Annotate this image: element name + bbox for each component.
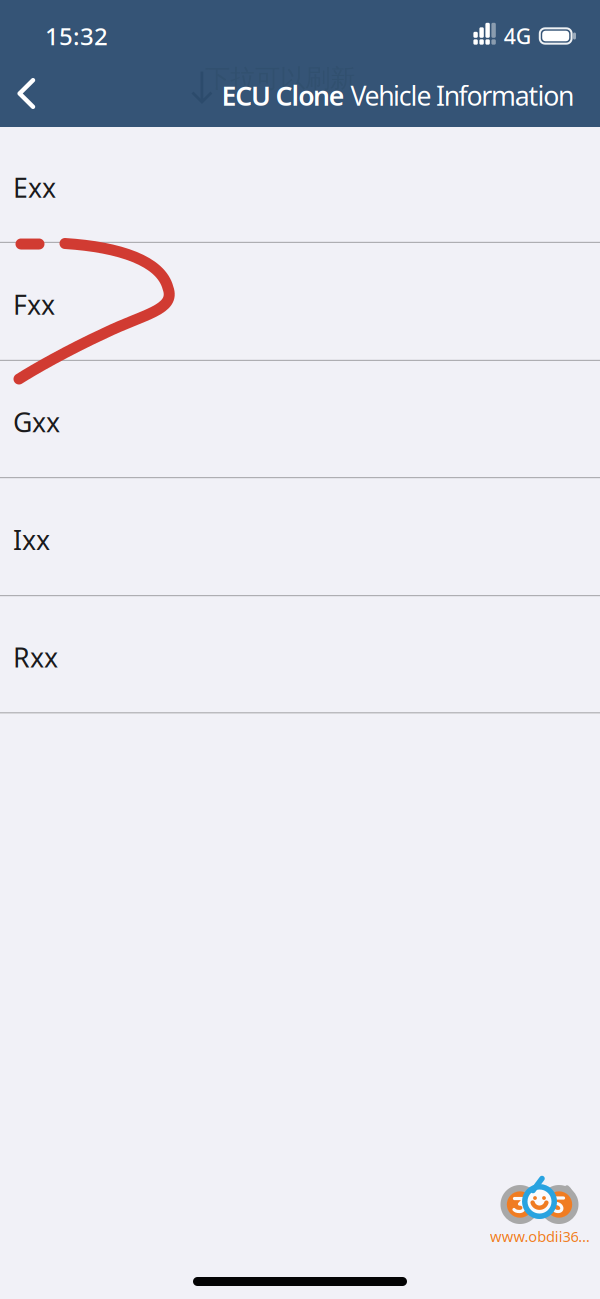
button[interactable]: Fxx [0, 243, 600, 361]
staticText: Exx [13, 170, 56, 205]
staticText: Vehicle Information [345, 78, 574, 113]
button[interactable]: Rxx [0, 596, 600, 713]
staticText: 15:32 [45, 20, 108, 52]
staticText: www.obdii365.com [490, 1226, 590, 1246]
staticText: 4G [504, 22, 532, 50]
staticText: Ixx [13, 522, 50, 557]
button[interactable]: Exx [0, 127, 600, 243]
staticText: Gxx [13, 404, 60, 440]
staticText: ECU Clone [221, 78, 345, 113]
button[interactable]: Ixx [0, 478, 600, 596]
staticText: Fxx [13, 287, 55, 322]
staticText: Rxx [13, 639, 58, 675]
staticText: 下拉可以刷新 [205, 63, 355, 94]
button[interactable]: Gxx [0, 361, 600, 478]
button[interactable]: Back [0, 60, 44, 127]
